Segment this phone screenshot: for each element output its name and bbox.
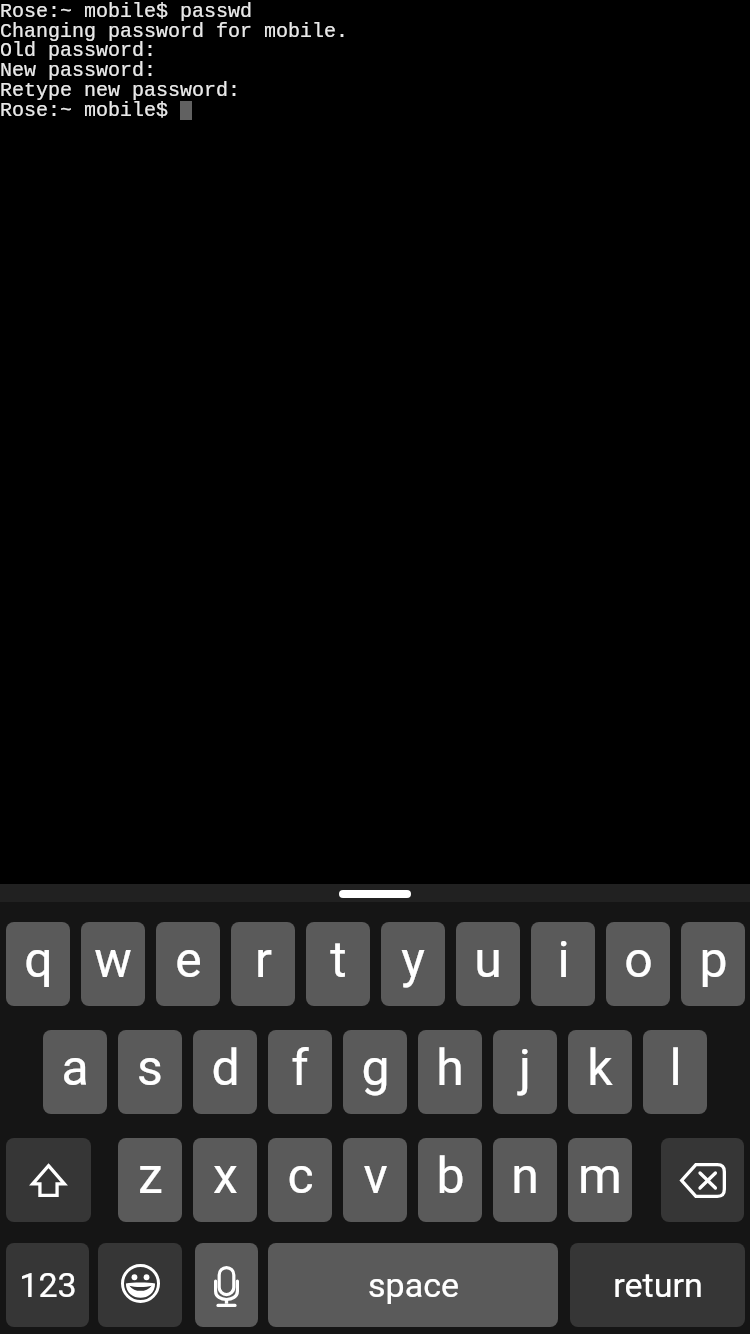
staticText: o [624,931,653,990]
button[interactable]: h [418,1030,482,1114]
staticText: Rose:~ mobile$ passwd [0,0,253,23]
staticText: g [361,1039,390,1098]
staticText: t [330,931,347,990]
button[interactable]: m [568,1138,632,1222]
button[interactable]: d [193,1030,257,1114]
button[interactable]: a [43,1030,107,1114]
staticText: j [519,1039,531,1098]
button[interactable]: v [343,1138,407,1222]
button[interactable]: n [493,1138,557,1222]
staticText: k [587,1039,613,1098]
button[interactable]: o [606,922,670,1006]
button[interactable]: k [568,1030,632,1114]
button[interactable]: y [381,922,445,1006]
button[interactable]: w [81,922,145,1006]
staticText: h [436,1039,464,1098]
button[interactable]: Shift [6,1138,91,1222]
staticText: a [61,1039,89,1098]
button[interactable]: p [681,922,745,1006]
button[interactable]: c [268,1138,332,1222]
staticText: New password: [0,59,157,82]
staticText: return [613,1265,703,1305]
staticText: l [669,1039,682,1098]
staticText: Changing password for mobile. [0,20,349,43]
staticText: z [138,1147,163,1206]
button[interactable]: s [118,1030,182,1114]
staticText: Rose:~ mobile$ [0,99,181,122]
staticText: i [557,931,570,990]
button[interactable]: q [6,922,70,1006]
staticText: c [287,1147,314,1206]
staticText: r [255,931,272,990]
button[interactable]: r [231,922,295,1006]
staticText: n [511,1147,539,1206]
button[interactable]: f [268,1030,332,1114]
button[interactable]: Emoji [98,1243,182,1327]
button[interactable]: t [306,922,370,1006]
staticText: e [175,931,202,990]
button[interactable]: l [643,1030,707,1114]
button[interactable]: g [343,1030,407,1114]
staticText: Old password: [0,39,157,62]
button[interactable]: i [531,922,595,1006]
staticText: v [363,1147,388,1206]
button[interactable]: 123 [6,1243,89,1327]
staticText: d [211,1039,240,1098]
button[interactable]: space [268,1243,558,1327]
button[interactable]: x [193,1138,257,1222]
staticText: b [436,1147,465,1206]
staticText: p [699,931,728,990]
button[interactable]: j [493,1030,557,1114]
button[interactable]: e [156,922,220,1006]
staticText: f [291,1039,309,1098]
staticText: y [401,931,425,990]
button[interactable]: z [118,1138,182,1222]
staticText: Retype new password: [0,79,241,102]
staticText: u [474,931,502,990]
staticText: x [213,1147,238,1206]
button[interactable]: Backspace [661,1138,744,1222]
staticText: s [137,1039,163,1098]
staticText: space [368,1265,459,1305]
button[interactable]: u [456,922,520,1006]
staticText: q [24,931,53,990]
staticText: 123 [19,1265,77,1305]
staticText: w [94,931,132,990]
button[interactable]: b [418,1138,482,1222]
button[interactable]: Dictation [195,1243,258,1327]
button[interactable]: return [570,1243,745,1327]
staticText: m [578,1147,622,1206]
